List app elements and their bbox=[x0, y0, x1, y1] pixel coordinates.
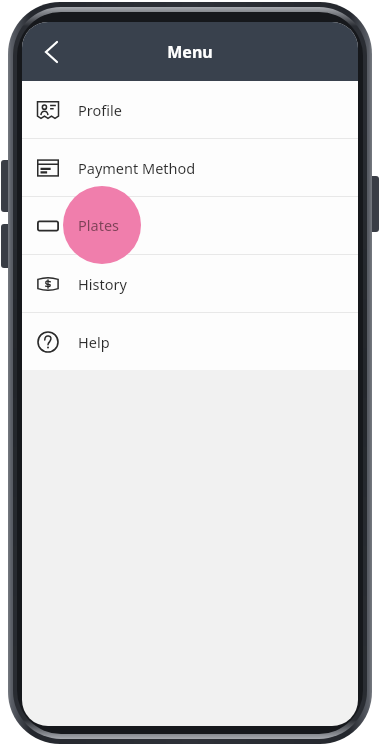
button[interactable]: History bbox=[22, 255, 358, 312]
button[interactable]: Help bbox=[22, 313, 358, 370]
staticText: Help bbox=[78, 332, 110, 352]
staticText: Payment Method bbox=[78, 158, 196, 178]
button[interactable]: Plates bbox=[22, 197, 358, 254]
staticText: Plates bbox=[78, 216, 120, 236]
staticText: History bbox=[78, 274, 127, 294]
button[interactable]: Back bbox=[28, 30, 72, 74]
staticText: Plates bbox=[78, 215, 120, 235]
button[interactable]: Payment Method bbox=[22, 139, 358, 196]
staticText: Profile bbox=[78, 100, 122, 120]
staticText: Menu bbox=[22, 41, 358, 63]
button[interactable]: Profile bbox=[22, 81, 358, 138]
